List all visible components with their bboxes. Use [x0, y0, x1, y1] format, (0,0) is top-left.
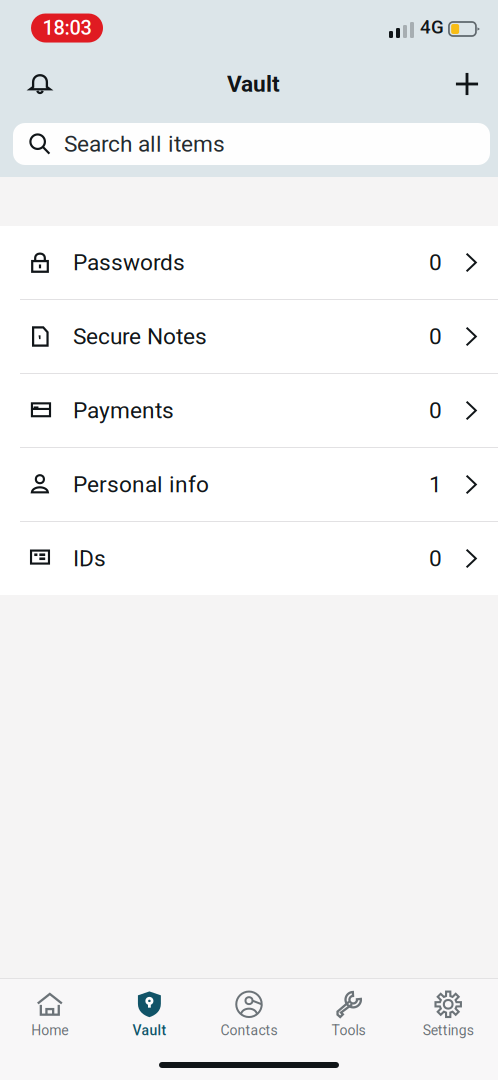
staticText: IDs — [73, 545, 106, 572]
staticText: Vault — [227, 71, 280, 97]
staticText: Settings — [423, 1022, 474, 1039]
button[interactable]: Vault — [100, 972, 199, 1057]
button[interactable]: Secure Notes — [0, 300, 498, 373]
staticText: 0 — [429, 249, 442, 276]
button[interactable]: IDs — [0, 522, 498, 595]
staticText: 1 — [429, 471, 442, 498]
staticText: Search all items — [64, 131, 225, 157]
staticText: 0 — [429, 397, 442, 424]
staticText: Personal info — [73, 471, 209, 498]
button[interactable]: Search all items — [13, 123, 490, 165]
button[interactable]: Add item — [443, 60, 491, 108]
button[interactable]: Notifications — [16, 60, 64, 108]
staticText: Vault — [132, 1022, 166, 1039]
staticText: Contacts — [220, 1022, 277, 1039]
button[interactable]: Passwords — [0, 226, 498, 299]
button[interactable]: Settings — [398, 972, 498, 1057]
staticText: 4G — [420, 16, 444, 38]
staticText: Tools — [332, 1022, 366, 1039]
staticText: 18:03 — [42, 16, 91, 40]
staticText: 0 — [429, 323, 442, 350]
button[interactable]: Personal info — [0, 448, 498, 521]
staticText: Secure Notes — [73, 323, 207, 350]
staticText: Payments — [73, 397, 174, 424]
button[interactable]: Payments — [0, 374, 498, 447]
staticText: 0 — [429, 545, 442, 572]
button[interactable]: Home — [0, 972, 100, 1057]
staticText: Home — [31, 1022, 68, 1039]
button[interactable]: Contacts — [199, 972, 299, 1057]
staticText: Passwords — [73, 249, 185, 276]
button[interactable]: Tools — [299, 972, 398, 1057]
